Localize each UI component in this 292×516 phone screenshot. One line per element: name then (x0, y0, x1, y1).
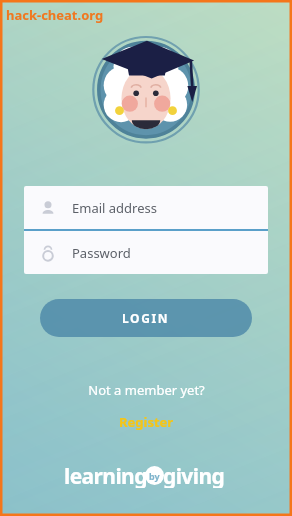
staticText: learning (64, 462, 147, 488)
button[interactable]: Email address (24, 186, 268, 229)
button[interactable]: Register (111, 411, 182, 433)
staticText: by (149, 470, 160, 482)
staticText: Password (72, 244, 131, 262)
button[interactable]: Learning by Giving (64, 462, 228, 488)
staticText: hack-cheat.org (6, 6, 104, 24)
button[interactable]: Password (24, 231, 268, 274)
staticText: LOGIN (122, 310, 170, 326)
staticText: giving (163, 462, 225, 488)
button[interactable]: LOGIN (40, 299, 252, 337)
staticText: Not a member yet? (88, 381, 205, 399)
staticText: Email address (72, 199, 157, 217)
staticText: Register (119, 413, 174, 431)
